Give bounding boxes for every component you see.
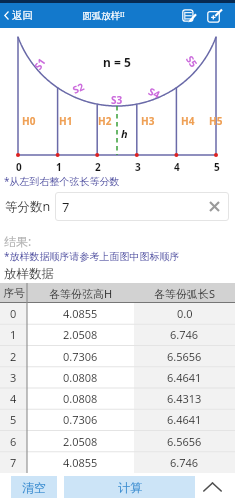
staticText: 7 bbox=[10, 455, 17, 470]
staticText: 放样数据 bbox=[4, 266, 54, 282]
staticText: 结果: bbox=[4, 233, 32, 249]
staticText: 4.0855 bbox=[63, 455, 98, 470]
staticText: 0.0 bbox=[177, 306, 193, 321]
staticText: 2 bbox=[95, 160, 101, 172]
button[interactable]: 7 bbox=[0, 452, 235, 473]
button[interactable]: New note bbox=[202, 3, 227, 28]
staticText: n = 5 bbox=[103, 54, 131, 70]
button[interactable]: 2 bbox=[0, 346, 235, 367]
staticText: H4 bbox=[181, 114, 195, 128]
button[interactable]: 1 bbox=[0, 324, 235, 345]
staticText: S4 bbox=[147, 84, 163, 100]
staticText: 计算 bbox=[118, 480, 142, 495]
staticText: 6.4641 bbox=[167, 412, 202, 427]
button[interactable]: 0 bbox=[0, 303, 235, 324]
staticText: 6.4313 bbox=[167, 391, 202, 406]
staticText: 6.746 bbox=[170, 327, 199, 342]
staticText: II bbox=[120, 10, 125, 19]
button[interactable]: Collapse bbox=[195, 476, 229, 498]
staticText: 4 bbox=[10, 391, 17, 406]
staticText: 2.0508 bbox=[63, 434, 98, 449]
staticText: *放样数据顺序请参考上面图中图标顺序 bbox=[4, 249, 180, 263]
staticText: 清空 bbox=[22, 480, 46, 495]
staticText: 序号 bbox=[3, 286, 25, 300]
staticText: 各等份弧长S bbox=[154, 286, 216, 301]
staticText: 返回 bbox=[12, 9, 33, 22]
staticText: 等分数n bbox=[5, 198, 51, 215]
button[interactable]: 6 bbox=[0, 431, 235, 452]
button[interactable]: 3 bbox=[0, 367, 235, 388]
staticText: 6.746 bbox=[170, 455, 199, 470]
staticText: 2 bbox=[10, 349, 17, 364]
staticText: 0.7306 bbox=[63, 349, 98, 364]
button[interactable]: 计算 bbox=[64, 476, 195, 498]
button[interactable]: 5 bbox=[0, 409, 235, 430]
staticText: H3 bbox=[141, 114, 155, 128]
staticText: 5 bbox=[214, 160, 220, 172]
staticText: 0.0808 bbox=[63, 391, 98, 406]
button[interactable]: 清空 bbox=[11, 476, 57, 498]
staticText: 6.5656 bbox=[167, 434, 202, 449]
staticText: 圆弧放样 bbox=[82, 10, 120, 22]
staticText: 6 bbox=[10, 434, 17, 449]
staticText: 7 bbox=[62, 198, 70, 216]
staticText: 0 bbox=[16, 160, 22, 172]
button[interactable]: Notes bbox=[176, 3, 201, 28]
staticText: *从左到右整个弦长等分数 bbox=[4, 174, 120, 188]
staticText: H5 bbox=[209, 114, 223, 128]
staticText: 6.4641 bbox=[167, 370, 202, 385]
staticText: 5 bbox=[10, 412, 17, 427]
staticText: H0 bbox=[22, 114, 36, 128]
button[interactable]: 4 bbox=[0, 388, 235, 409]
staticText: 1 bbox=[10, 327, 17, 342]
staticText: h bbox=[121, 126, 128, 141]
staticText: S3 bbox=[111, 93, 123, 105]
staticText: 0.0808 bbox=[63, 370, 98, 385]
staticText: 3 bbox=[10, 370, 17, 385]
staticText: 0 bbox=[10, 306, 17, 321]
staticText: H1 bbox=[59, 114, 73, 128]
staticText: 各等份弦高H bbox=[49, 286, 113, 301]
button[interactable]: 返回 bbox=[0, 3, 40, 28]
staticText: 0.7306 bbox=[63, 412, 98, 427]
staticText: S5 bbox=[185, 53, 201, 69]
staticText: 3 bbox=[135, 160, 141, 172]
staticText: 4.0855 bbox=[63, 306, 98, 321]
staticText: 6.5656 bbox=[167, 349, 202, 364]
staticText: 4 bbox=[174, 160, 180, 172]
staticText: 1 bbox=[56, 160, 62, 172]
staticText: 2.0508 bbox=[63, 327, 98, 342]
staticText: S1 bbox=[31, 55, 47, 71]
staticText: H2 bbox=[98, 114, 112, 128]
staticText: S2 bbox=[70, 79, 86, 95]
button[interactable]: 7 bbox=[55, 192, 229, 221]
button[interactable]: Clear bbox=[207, 199, 222, 214]
